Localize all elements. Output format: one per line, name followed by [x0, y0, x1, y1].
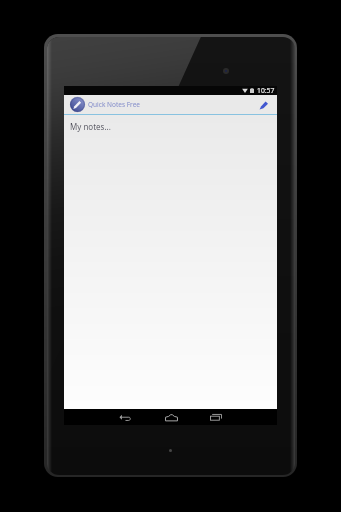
staticText: 10:57: [257, 86, 275, 95]
staticText: My notes...: [70, 121, 111, 132]
button[interactable]: Recent apps: [203, 409, 229, 425]
button[interactable]: Home: [158, 409, 184, 425]
staticText: Quick Notes Free: [88, 100, 141, 109]
button[interactable]: Back: [112, 409, 138, 425]
button[interactable]: New note: [255, 95, 273, 114]
